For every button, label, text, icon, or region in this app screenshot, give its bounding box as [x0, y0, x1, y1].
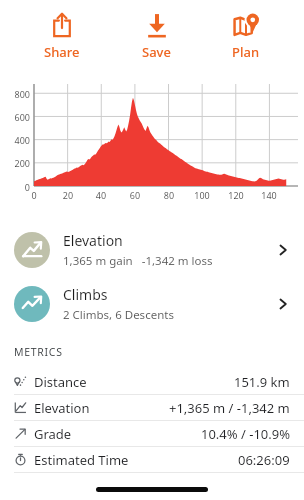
staticText: 1,365 m gain -1,342 m loss	[63, 253, 213, 269]
staticText: 40	[91, 189, 111, 201]
staticText: 600	[0, 111, 30, 123]
button[interactable]: Climbs	[0, 277, 304, 331]
staticText: 800	[0, 88, 30, 100]
staticText: 60	[125, 189, 145, 201]
button[interactable]: Elevation	[0, 223, 304, 277]
staticText: 151.9 km	[234, 373, 290, 391]
staticText: 0	[24, 189, 44, 201]
staticText: Elevation	[63, 231, 123, 250]
staticText: 2 Climbs, 6 Descents	[63, 307, 174, 323]
staticText: 120	[226, 189, 246, 201]
staticText: Estimated Time	[34, 451, 129, 469]
staticText: +1,365 m / -1,342 m	[169, 399, 290, 417]
staticText: 80	[159, 189, 179, 201]
button[interactable]: Estimated Time	[0, 447, 304, 472]
staticText: 200	[0, 157, 30, 169]
button[interactable]: Save	[124, 10, 189, 63]
staticText: Climbs	[63, 285, 108, 304]
staticText: 140	[259, 189, 279, 201]
staticText: Save	[142, 43, 171, 61]
staticText: Grade	[34, 425, 72, 443]
staticText: 0	[0, 181, 30, 193]
staticText: 100	[192, 189, 212, 201]
button[interactable]: Grade	[0, 421, 304, 446]
staticText: Share	[44, 43, 80, 61]
button[interactable]: Elevation	[0, 395, 304, 420]
staticText: 10.4% / -10.9%	[201, 425, 290, 443]
staticText: METRICS	[14, 345, 63, 359]
other: Open Climbs	[276, 297, 290, 311]
staticText: Elevation	[34, 399, 90, 417]
button[interactable]: Share	[26, 10, 98, 63]
staticText: Plan	[232, 43, 260, 61]
other: Open Elevation	[276, 243, 290, 257]
button[interactable]: Plan	[214, 10, 278, 63]
staticText: 06:26:09	[238, 451, 290, 469]
staticText: Distance	[34, 373, 87, 391]
button[interactable]: Distance	[0, 369, 304, 394]
staticText: 400	[0, 134, 30, 146]
staticText: 20	[58, 189, 78, 201]
